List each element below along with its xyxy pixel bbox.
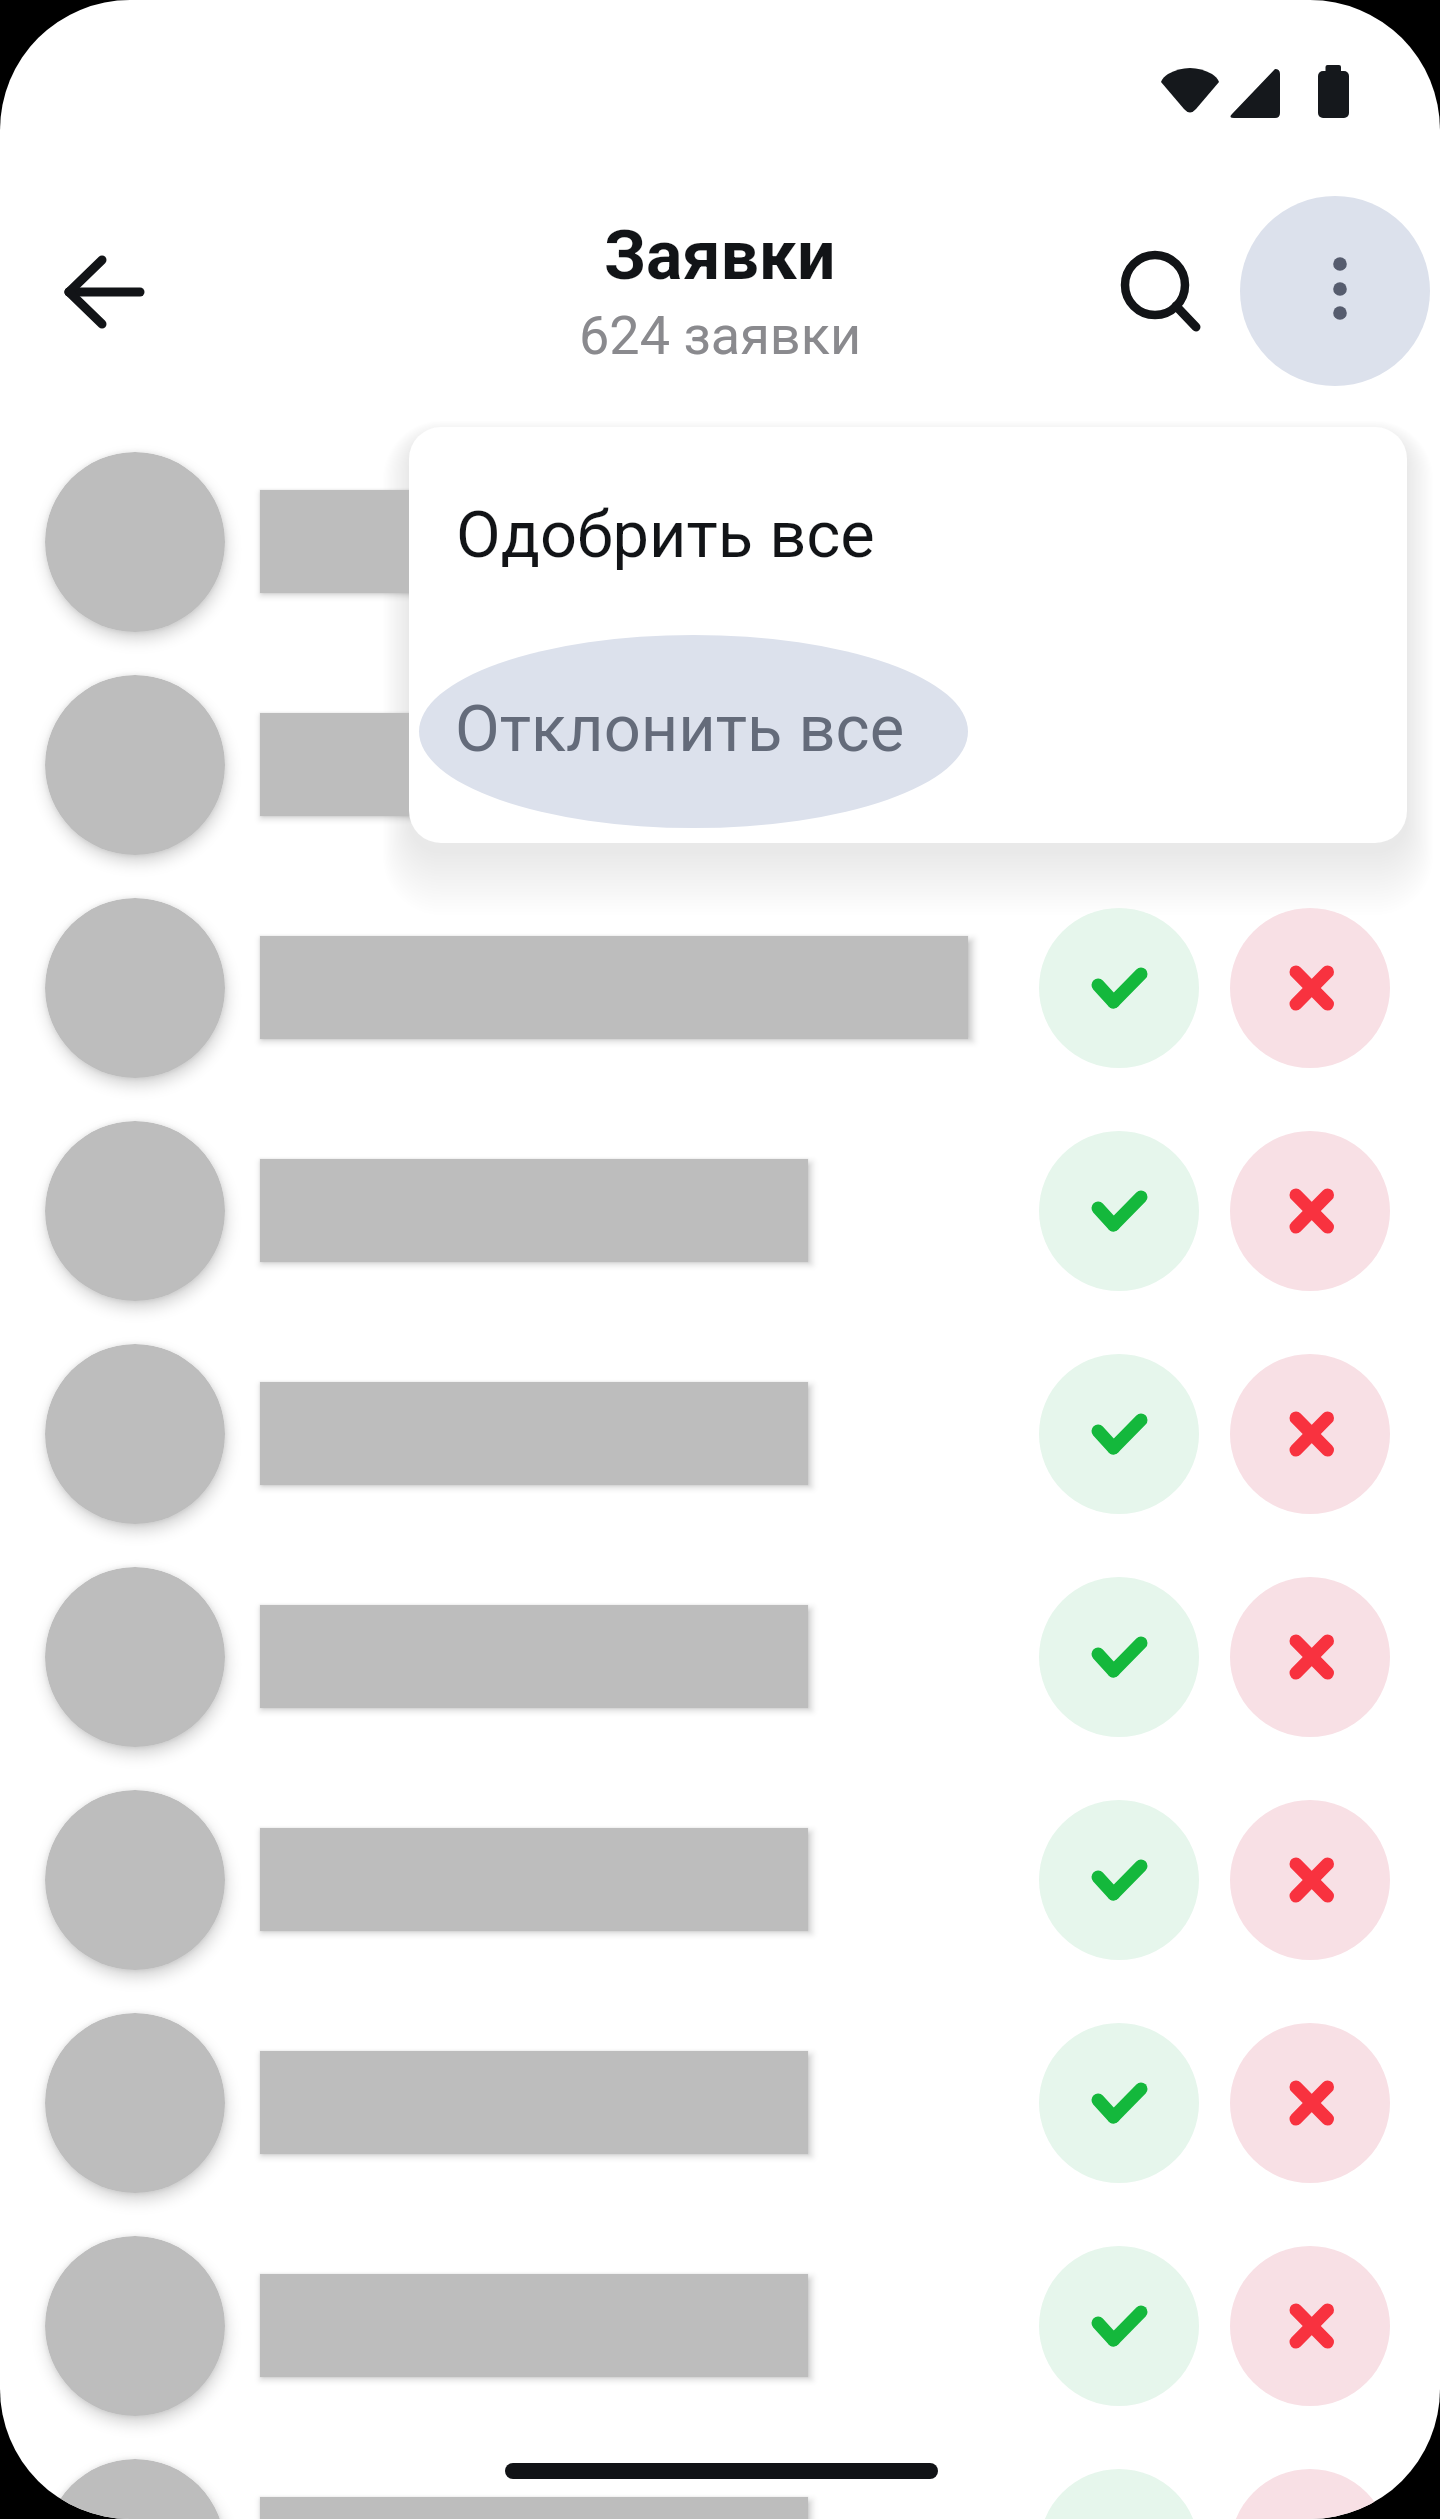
button[interactable]: Заявка — [0, 2437, 1440, 2519]
button[interactable]: Заявка — [0, 2214, 1440, 2437]
button[interactable]: More options — [1240, 196, 1430, 386]
button[interactable]: Заявка — [0, 876, 1440, 1099]
button[interactable]: Заявка — [0, 1099, 1440, 1322]
staticText: Отклонить все — [455, 691, 905, 767]
button[interactable]: Одобрить все — [409, 438, 1407, 632]
button[interactable]: Заявка — [0, 1322, 1440, 1545]
button[interactable]: Approve — [1039, 1354, 1199, 1514]
button[interactable]: Заявка — [0, 430, 1440, 653]
button[interactable]: Reject — [1230, 2246, 1390, 2406]
staticText: Заявки — [604, 216, 836, 296]
button[interactable]: Заявка — [0, 1991, 1440, 2214]
button[interactable]: Search — [1075, 205, 1235, 365]
staticText: Одобрить все — [456, 497, 875, 573]
staticText: 624 заявки — [579, 304, 862, 367]
button[interactable]: Reject — [1230, 908, 1390, 1068]
button[interactable]: Approve — [1039, 1800, 1199, 1960]
button[interactable]: Заявка — [0, 1768, 1440, 1991]
button[interactable]: Approve — [1039, 2469, 1199, 2519]
button[interactable]: Back — [24, 212, 184, 372]
button[interactable]: Reject — [1230, 1354, 1390, 1514]
button[interactable]: Отклонить все — [409, 632, 1407, 826]
button[interactable]: Approve — [1039, 2023, 1199, 2183]
button[interactable]: Approve — [1039, 1131, 1199, 1291]
button[interactable]: Reject — [1230, 1577, 1390, 1737]
button[interactable]: Reject — [1230, 1131, 1390, 1291]
button[interactable]: Reject — [1230, 2023, 1390, 2183]
button[interactable]: Заявка — [0, 1545, 1440, 1768]
button[interactable]: Approve — [1039, 1577, 1199, 1737]
button[interactable]: Approve — [1039, 908, 1199, 1068]
button[interactable]: Reject — [1230, 1800, 1390, 1960]
button[interactable]: Reject — [1230, 2469, 1390, 2519]
button[interactable]: Approve — [1039, 2246, 1199, 2406]
button[interactable]: Заявка — [0, 653, 1440, 876]
